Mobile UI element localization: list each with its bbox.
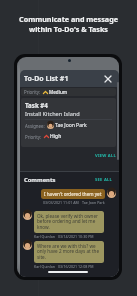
staticText: Communicate and message [19, 14, 118, 24]
staticText: Tae Joon Park [82, 200, 105, 205]
staticText: Ok, please verify with owner before orde… [37, 213, 101, 231]
staticText: 03/14/2021 10:30 PM [58, 234, 94, 239]
staticText: Priority: [24, 89, 41, 95]
staticText: Medium [49, 89, 68, 95]
staticText: 03/03/2021 11:01 AM [43, 200, 79, 205]
button[interactable]: VIEW ALL [93, 151, 119, 161]
staticText: High [50, 133, 62, 140]
button[interactable]: Ok, please verify with owner before orde… [34, 211, 104, 233]
staticText: SEE ALL [95, 177, 113, 183]
button[interactable]: Where are we with this? we only have 2 m… [34, 241, 104, 263]
staticText: To-Do List #1 [24, 74, 69, 84]
staticText: Karl Quinlan [34, 234, 55, 239]
staticText: Install Kitchen Island [25, 110, 80, 118]
button[interactable]: Task #4 [21, 98, 116, 147]
staticText: 03/16/2021 12:08 PM [58, 264, 94, 269]
staticText: Priority: [25, 134, 42, 140]
button[interactable]: SEE ALL [94, 176, 114, 184]
button[interactable]: I haven't ordered them yet [41, 189, 105, 199]
staticText: Tae Joon Park [55, 122, 87, 129]
staticText: within To-Do's & Tasks [29, 24, 108, 34]
staticText: VIEW ALL [95, 153, 117, 159]
staticText: I haven't ordered them yet [44, 191, 102, 197]
staticText: Task #4 [25, 101, 48, 109]
button[interactable]: Close [101, 72, 114, 85]
staticText: Where are we with this? we only have 2 m… [37, 243, 101, 261]
staticText: Assignee: [25, 123, 45, 129]
staticText: Karl Quinlan [34, 264, 55, 269]
button[interactable]: Priority: [21, 88, 116, 96]
staticText: Comments [24, 176, 56, 184]
